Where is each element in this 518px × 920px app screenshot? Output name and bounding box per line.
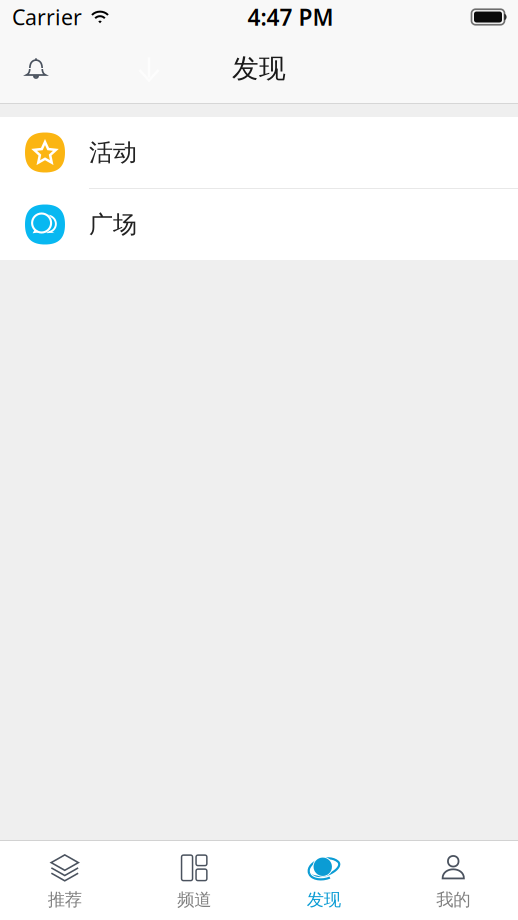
staticText: 我的	[436, 889, 470, 910]
button[interactable]: 活动	[0, 117, 518, 189]
button[interactable]: 推荐	[0, 842, 129, 919]
button[interactable]: 广场	[0, 189, 518, 260]
staticText: 活动	[89, 138, 137, 167]
button[interactable]: Notifications	[0, 46, 64, 90]
staticText: 广场	[89, 210, 137, 239]
button[interactable]: 频道	[129, 842, 259, 919]
staticText: 发现	[232, 52, 286, 85]
button[interactable]: 我的	[388, 842, 518, 919]
staticText: 推荐	[48, 889, 82, 910]
button[interactable]: 发现	[259, 842, 388, 919]
staticText: 发现	[307, 889, 341, 910]
staticText: 频道	[177, 889, 211, 910]
staticText: Carrier	[12, 3, 82, 31]
staticText: 4:47 PM	[247, 2, 333, 32]
